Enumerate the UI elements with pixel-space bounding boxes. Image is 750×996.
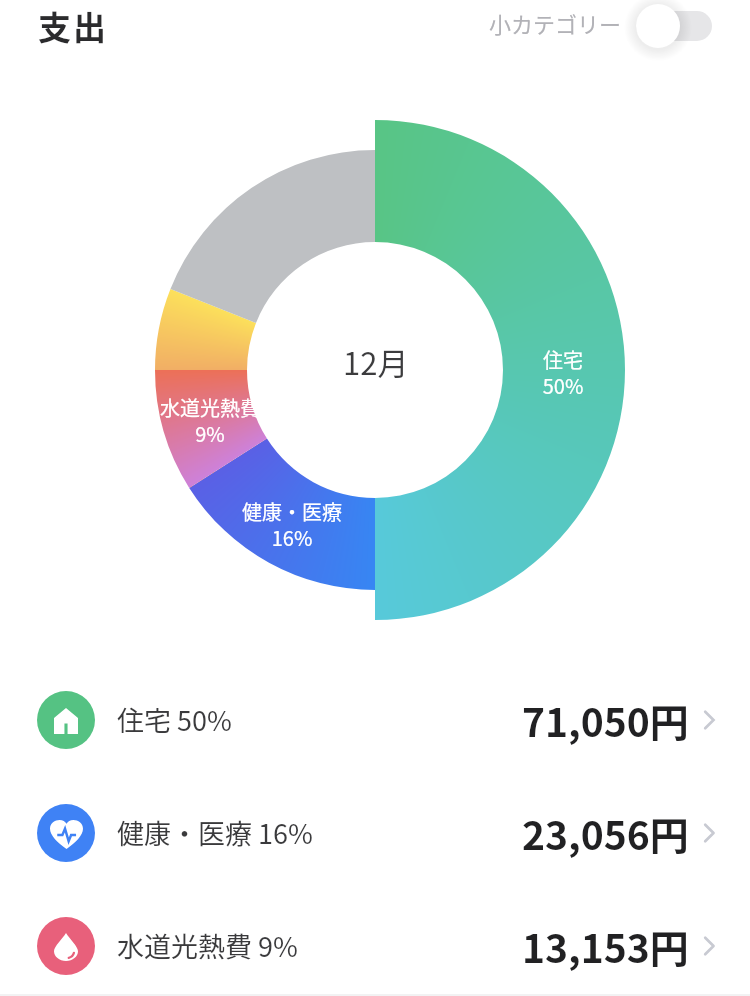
staticText: 小カテゴリー xyxy=(489,7,622,39)
staticText: 健康・医療 xyxy=(117,813,252,852)
staticText: 健康・医療 16% xyxy=(132,497,452,552)
button[interactable]: Toggle subcategories xyxy=(630,0,722,58)
staticText: 12月 xyxy=(343,339,409,384)
staticText: 9% xyxy=(252,926,298,965)
staticText: 住宅 xyxy=(117,700,171,739)
button[interactable]: 住宅 xyxy=(0,663,750,776)
staticText: 支出 xyxy=(37,2,107,50)
staticText: 71,050円 xyxy=(522,692,689,748)
staticText: 23,056円 xyxy=(522,805,689,861)
staticText: 16% xyxy=(252,813,313,852)
staticText: 住宅 50% xyxy=(403,345,723,400)
staticText: 50% xyxy=(171,700,232,739)
staticText: 13,153円 xyxy=(522,918,689,974)
button[interactable]: 健康・医療 xyxy=(0,776,750,889)
staticText: 水道光熱費 9% xyxy=(50,393,370,448)
staticText: 水道光熱費 xyxy=(117,926,252,965)
button[interactable]: 水道光熱費 xyxy=(0,889,750,996)
